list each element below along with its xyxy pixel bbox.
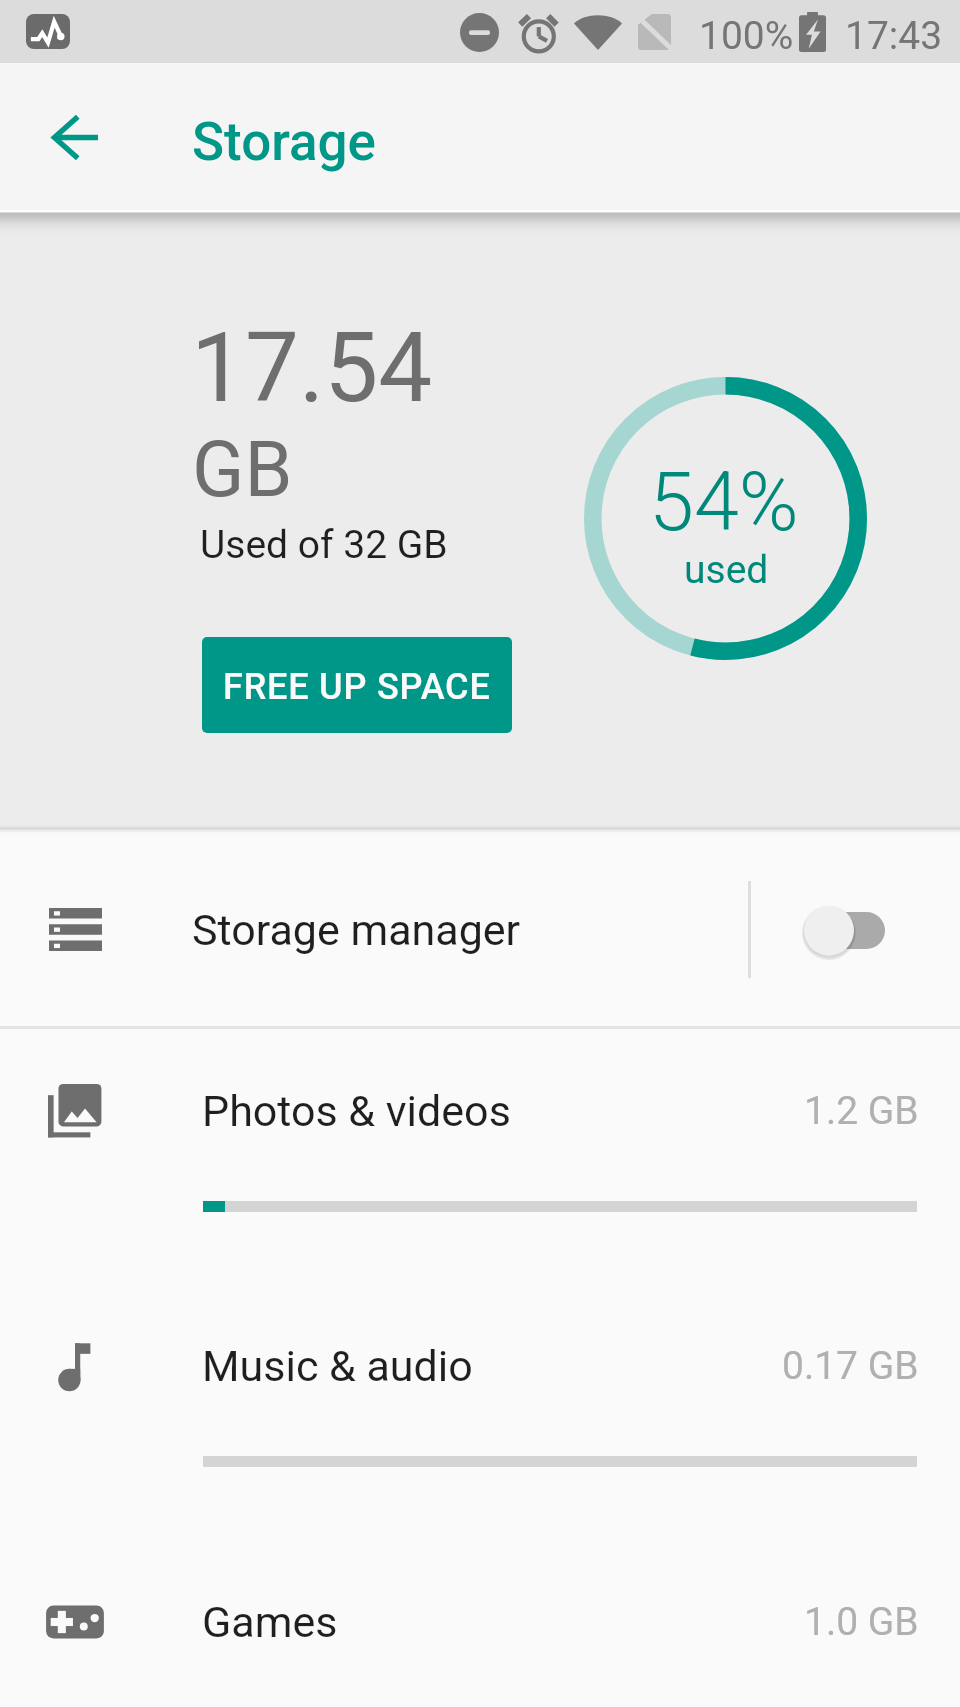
button[interactable]: Music & audio bbox=[0, 1284, 960, 1540]
button[interactable]: Storage manager toggle bbox=[751, 833, 960, 1026]
staticText: 0.17 GB bbox=[782, 1343, 919, 1389]
button[interactable]: Games bbox=[0, 1540, 960, 1707]
staticText: GB bbox=[192, 425, 293, 515]
staticText: 100% bbox=[699, 13, 794, 59]
button[interactable]: FREE UP SPACE bbox=[202, 637, 512, 733]
button[interactable]: Storage manager bbox=[0, 833, 960, 1026]
staticText: 1.2 GB bbox=[804, 1088, 919, 1134]
button[interactable]: Photos & videos bbox=[0, 1029, 960, 1284]
staticText: 54% bbox=[649, 455, 799, 550]
staticText: Games bbox=[202, 1597, 338, 1647]
staticText: Photos & videos bbox=[202, 1086, 511, 1136]
staticText: used bbox=[684, 547, 769, 593]
staticText: 17:43 bbox=[845, 13, 943, 59]
staticText: Music & audio bbox=[202, 1341, 473, 1391]
staticText: Storage bbox=[192, 111, 376, 173]
staticText: Used of 32 GB bbox=[200, 522, 448, 568]
button[interactable]: Back bbox=[30, 92, 120, 182]
staticText: FREE UP SPACE bbox=[223, 666, 491, 708]
staticText: 1.0 GB bbox=[804, 1599, 919, 1645]
staticText: Storage manager bbox=[192, 905, 521, 955]
staticText: 17.54 bbox=[191, 312, 433, 425]
